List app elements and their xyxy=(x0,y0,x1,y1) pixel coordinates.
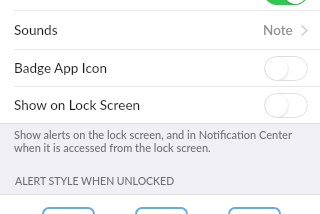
button[interactable]: Show on Lock Screen xyxy=(264,93,308,118)
staticText: Badge App Icon xyxy=(14,60,108,76)
button[interactable]: Sounds xyxy=(0,11,320,49)
button[interactable]: Badge App Icon xyxy=(264,56,308,81)
staticText: Show alerts on the lock screen, and in N… xyxy=(14,128,292,154)
button[interactable]: Show on Lock Screen xyxy=(0,87,320,123)
staticText: Show on Lock Screen xyxy=(14,97,141,113)
staticText: Sounds xyxy=(14,22,58,38)
staticText: ALERT STYLE WHEN UNLOCKED xyxy=(15,175,175,188)
button[interactable]: None xyxy=(42,207,95,214)
button[interactable]: Allow Notifications xyxy=(264,0,308,5)
button[interactable]: Banners xyxy=(135,207,188,214)
button[interactable]: Alerts xyxy=(228,207,281,214)
staticText: Note xyxy=(263,22,293,38)
button[interactable]: Badge App Icon xyxy=(0,50,320,86)
